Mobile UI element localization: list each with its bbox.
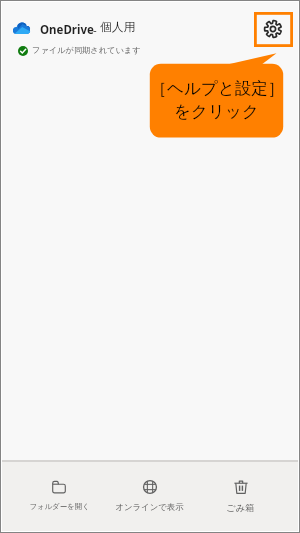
button[interactable]: ごみ箱: [195, 462, 286, 522]
staticText: -: [93, 22, 97, 38]
staticText: 個人用: [100, 20, 136, 35]
staticText: オンラインで表示: [115, 502, 184, 513]
staticText: ファイルが同期されています: [32, 45, 141, 55]
button[interactable]: ヘルプと設定: [254, 12, 293, 47]
button[interactable]: フォルダーを開く: [14, 462, 104, 522]
staticText: ［ヘルプと設定］: [150, 78, 283, 99]
button[interactable]: オンラインで表示: [104, 462, 195, 522]
staticText: OneDrive: [40, 22, 94, 38]
staticText: ごみ箱: [226, 502, 255, 514]
staticText: フォルダーを開く: [29, 502, 90, 511]
staticText: をクリック: [174, 101, 259, 122]
